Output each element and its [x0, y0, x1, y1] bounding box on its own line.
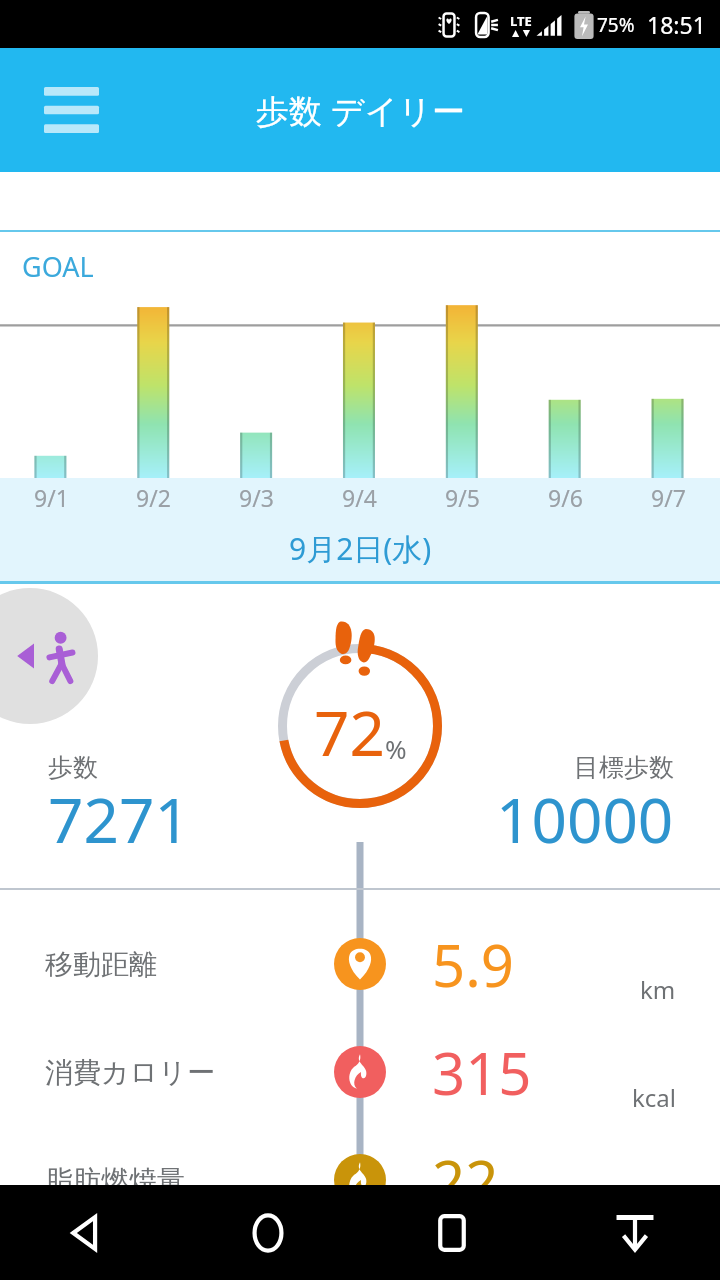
button[interactable]: 脂肪燃焼量 [0, 1126, 720, 1234]
staticText: 10000 [496, 777, 674, 861]
staticText: 歩数 [48, 752, 98, 783]
staticText: 315 [432, 1033, 532, 1112]
staticText: kcal [632, 1081, 676, 1114]
button[interactable]: Menu [30, 75, 112, 145]
staticText: km [640, 973, 676, 1006]
staticText: 5.9 [432, 925, 514, 1004]
button[interactable]: 72 [260, 626, 460, 826]
staticText: 9/6 [548, 482, 583, 513]
staticText: 9/5 [445, 482, 480, 513]
staticText: 移動距離 [45, 947, 157, 982]
staticText: 9/4 [342, 482, 377, 513]
staticText: 22 [432, 1141, 499, 1220]
staticText: 脂肪燃焼量 [45, 1163, 185, 1198]
staticText: 72 [314, 690, 385, 774]
button[interactable]: 移動距離 [0, 910, 720, 1018]
button[interactable]: Back [40, 1188, 130, 1278]
staticText: LTE [510, 12, 532, 30]
staticText: 目標歩数 [574, 752, 674, 783]
button[interactable]: Hide [590, 1188, 680, 1278]
button[interactable]: 消費カロリー [0, 1018, 720, 1126]
button[interactable]: Previous [0, 588, 98, 724]
button[interactable]: Recents [407, 1188, 497, 1278]
staticText: 7271 [48, 777, 190, 861]
button[interactable]: Home [223, 1188, 313, 1278]
staticText: 9/3 [239, 482, 274, 513]
staticText: 9/7 [651, 482, 686, 513]
staticText: 消費カロリー [45, 1055, 215, 1090]
staticText: 9/2 [136, 482, 171, 513]
staticText: 9/1 [34, 482, 69, 513]
staticText: % [385, 731, 407, 766]
staticText: 18:51 [647, 9, 706, 40]
staticText: GOAL [22, 248, 94, 285]
staticText: 歩数 デイリー [256, 88, 465, 133]
staticText: 75% [597, 12, 635, 38]
staticText: 9月2日(水) [289, 528, 432, 569]
